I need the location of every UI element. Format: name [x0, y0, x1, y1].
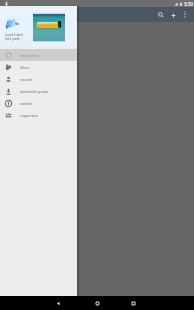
button[interactable]: More options [179, 9, 190, 20]
button[interactable]: Home [87, 296, 107, 310]
button[interactable]: Field guide photo [33, 12, 65, 41]
staticText: filters [20, 65, 30, 70]
staticText: supporters [20, 113, 39, 118]
staticText: website [20, 101, 33, 106]
staticText: download guides [20, 89, 49, 94]
button[interactable]: Add [167, 9, 179, 21]
button[interactable]: Lizard Island [0, 6, 77, 46]
button[interactable]: filters [0, 61, 77, 73]
staticText: Lizard Island [5, 33, 23, 37]
button[interactable]: Recent apps [123, 296, 143, 310]
staticText: field guide [5, 37, 20, 41]
staticText: records [20, 77, 33, 82]
button[interactable]: Search [154, 8, 167, 21]
button[interactable]: field guides [0, 49, 77, 61]
staticText: field guides [20, 53, 40, 58]
button[interactable]: supporters [0, 109, 77, 121]
button[interactable]: records [0, 73, 77, 85]
button[interactable]: download guides [0, 85, 77, 97]
staticText: 3:39 [184, 1, 193, 7]
button[interactable]: Back [48, 296, 68, 310]
button[interactable]: website [0, 97, 77, 109]
